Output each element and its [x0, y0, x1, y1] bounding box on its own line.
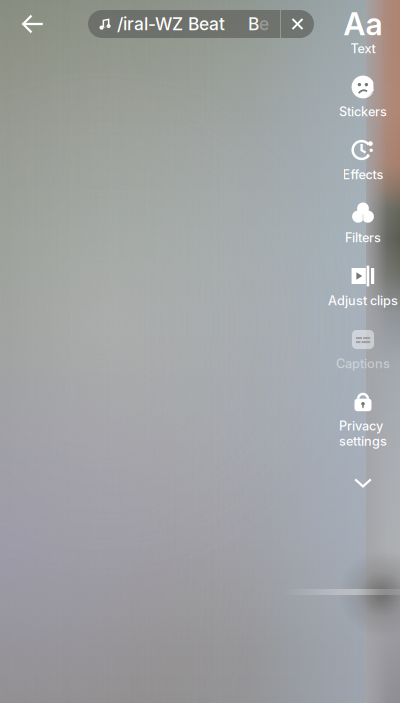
staticText: /iral-WZ Beat: [117, 13, 225, 34]
button[interactable]: Filters: [327, 200, 399, 263]
staticText: Privacy settings: [339, 418, 387, 449]
staticText: Filters: [345, 230, 381, 245]
staticText: B: [248, 13, 259, 34]
button[interactable]: Captions: [327, 326, 399, 389]
button[interactable]: Aa: [327, 11, 399, 74]
button[interactable]: Effects: [327, 137, 399, 200]
button[interactable]: Stickers: [327, 74, 399, 137]
button[interactable]: Remove sound: [281, 10, 314, 38]
button[interactable]: Back: [11, 7, 55, 41]
staticText: Aa: [343, 5, 382, 42]
staticText: Text: [350, 41, 375, 56]
staticText: Captions: [336, 356, 390, 371]
button[interactable]: Collapse tools: [327, 466, 399, 500]
staticText: Effects: [342, 167, 383, 182]
staticText: e: [259, 13, 269, 34]
staticText: Adjust clips: [328, 293, 398, 308]
staticText: Stickers: [339, 104, 387, 119]
button[interactable]: Adjust clips: [327, 263, 399, 326]
button[interactable]: /iral-WZ Beat: [88, 10, 280, 38]
button[interactable]: Privacy settings: [327, 389, 399, 452]
